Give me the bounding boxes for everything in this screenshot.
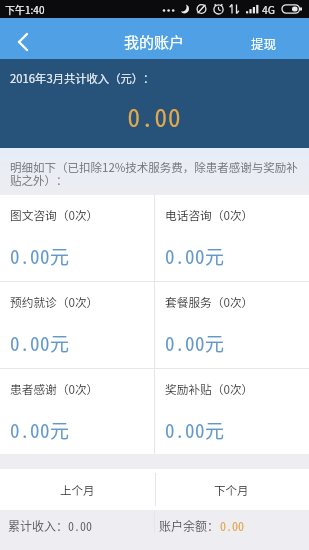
staticText: 4G	[262, 2, 276, 17]
staticText: 我的账户	[124, 31, 185, 53]
staticText: 账户余额：	[159, 517, 220, 534]
button[interactable]: 套餐服务（0次）	[155, 282, 309, 368]
staticText: 奖励补贴（0次）	[165, 380, 254, 397]
button[interactable]: 下个月	[154, 469, 309, 510]
button[interactable]: 预约就诊（0次）	[0, 282, 154, 368]
staticText: 患者感谢（0次）	[10, 380, 99, 397]
staticText: 下个月	[214, 482, 249, 499]
staticText: 上个月	[60, 482, 95, 499]
staticText: 0.00	[220, 517, 245, 534]
staticText: 0.00元	[10, 242, 70, 270]
button[interactable]: 上个月	[0, 469, 154, 510]
staticText: 0.00元	[165, 416, 225, 444]
staticText: 电话咨询（0次）	[165, 206, 254, 223]
staticText: 套餐服务（0次）	[165, 293, 254, 310]
staticText: 图文咨询（0次）	[10, 206, 99, 223]
staticText: 预约就诊（0次）	[10, 293, 99, 310]
staticText: 2016年3月共计收入（元）：	[10, 70, 155, 86]
button[interactable]: 提现	[237, 18, 309, 59]
button[interactable]: 患者感谢（0次）	[0, 369, 154, 454]
staticText: 0.00元	[165, 242, 225, 270]
button[interactable]: 图文咨询（0次）	[0, 195, 154, 281]
staticText: 提现	[251, 34, 277, 52]
staticText: 下午1:40	[5, 2, 45, 16]
staticText: 累计收入：0.00	[8, 517, 93, 534]
button[interactable]: Back	[0, 18, 46, 59]
staticText: 0.00	[0, 98, 309, 134]
staticText: 0.00元	[10, 416, 70, 444]
button[interactable]: 电话咨询（0次）	[155, 195, 309, 281]
button[interactable]: 奖励补贴（0次）	[155, 369, 309, 454]
staticText: 0.00元	[10, 329, 70, 357]
staticText: 明细如下（已扣除12%技术服务费，除患者感谢与奖励补贴之外）：	[10, 159, 299, 189]
staticText: 0.00元	[165, 329, 225, 357]
